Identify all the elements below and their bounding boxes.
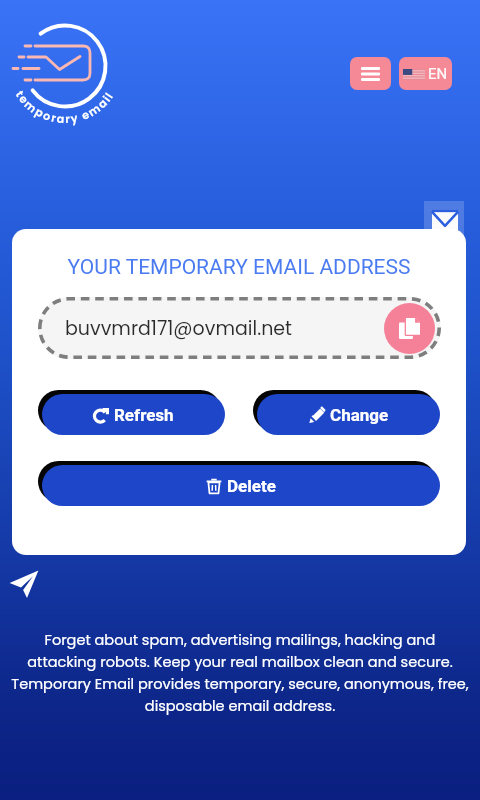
button[interactable]: Copy email — [384, 303, 435, 354]
button[interactable]: Refresh — [42, 394, 229, 439]
button[interactable]: Menu — [350, 57, 391, 90]
staticText: EN — [428, 65, 448, 83]
staticText: buvvmrd171@ovmail.net — [65, 315, 293, 342]
button[interactable]: Telegram — [9, 569, 39, 599]
button[interactable]: EN — [399, 57, 452, 90]
button[interactable]: Delete — [42, 465, 444, 510]
staticText: Refresh — [114, 405, 174, 425]
staticText: Delete — [227, 476, 276, 496]
staticText: YOUR TEMPORARY EMAIL ADDRESS — [12, 255, 466, 280]
staticText: Change — [330, 405, 389, 425]
button[interactable]: Change — [257, 394, 444, 439]
staticText: Forget about spam, advertising mailings,… — [0, 630, 480, 716]
